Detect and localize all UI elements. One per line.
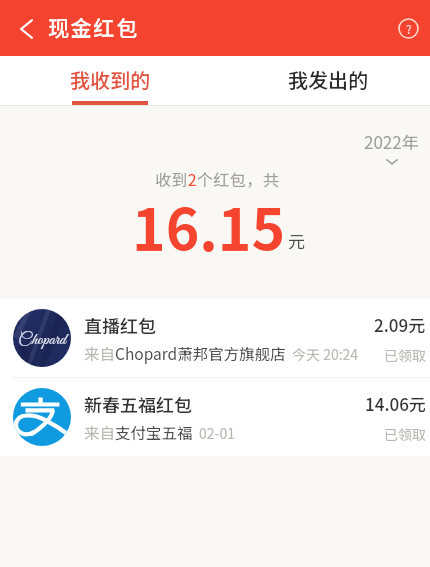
staticText: 新春五福红包 [84,391,192,417]
staticText: 今天 20:24 [292,344,359,364]
staticText: 来自Chopard萧邦官方旗舰店 [84,342,286,364]
button[interactable]: 我收到的 [0,56,215,106]
staticText: 来自支付宝五福 [84,421,193,443]
staticText: 14.06元 [365,391,426,416]
staticText: 已领取 [384,345,426,365]
staticText: 2.09元 [374,312,426,337]
staticText: 直播红包 [84,312,156,338]
staticText: Chopard [13,330,71,351]
staticText: ? [406,20,412,37]
staticText: 02-01 [199,423,235,443]
staticText: 16.15 [132,185,286,268]
button[interactable]: Chopard [0,299,430,377]
staticText: 已领取 [384,424,426,444]
staticText: 现金红包 [48,12,140,42]
staticText: 我收到的 [70,65,150,94]
button[interactable]: Help [390,10,426,46]
button[interactable]: 新春五福红包 [0,378,430,456]
staticText: 2022年 [364,129,419,154]
button[interactable]: Back [8,10,44,46]
staticText: 收到2个红包，共 [155,167,280,190]
button[interactable]: 2022年 [364,129,419,165]
staticText: 元 [288,228,305,253]
button[interactable]: 我发出的 [215,56,430,106]
staticText: 我发出的 [288,65,368,94]
